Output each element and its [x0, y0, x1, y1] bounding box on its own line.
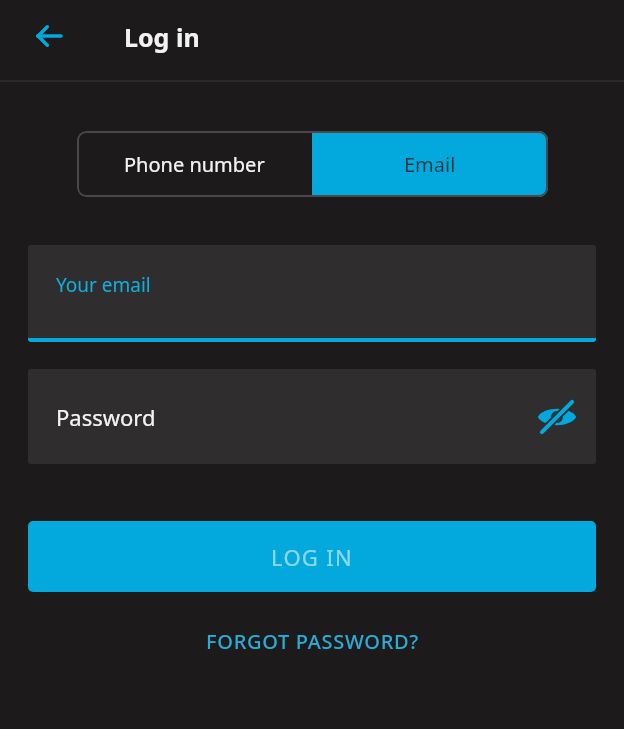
button[interactable]: FORGOT PASSWORD?: [192, 619, 433, 664]
button[interactable]: Show password: [531, 391, 583, 443]
staticText: Email: [404, 151, 456, 178]
staticText: Password: [56, 402, 156, 432]
button[interactable]: Password: [28, 369, 596, 464]
staticText: Your email: [56, 272, 151, 298]
button[interactable]: Your email: [28, 245, 596, 342]
button[interactable]: Email: [312, 131, 548, 197]
button[interactable]: LOG IN: [28, 521, 596, 592]
button[interactable]: Back: [25, 12, 73, 60]
staticText: LOG IN: [271, 542, 353, 572]
staticText: Phone number: [124, 151, 265, 178]
staticText: Log in: [124, 20, 200, 54]
staticText: FORGOT PASSWORD?: [206, 628, 419, 655]
button[interactable]: Phone number: [77, 131, 312, 197]
